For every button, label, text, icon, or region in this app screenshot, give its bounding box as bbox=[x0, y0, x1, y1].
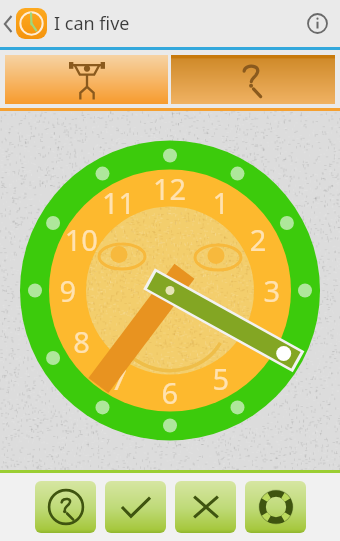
button[interactable]: Help bbox=[35, 481, 96, 533]
button[interactable]: Accept bbox=[105, 481, 166, 533]
staticText: I can five bbox=[54, 11, 130, 36]
button[interactable]: Reset bbox=[245, 481, 306, 533]
button[interactable]: Back bbox=[3, 0, 47, 47]
button[interactable]: Cancel bbox=[175, 481, 236, 533]
button[interactable]: Exercise bbox=[5, 55, 168, 104]
button[interactable]: Help bbox=[171, 55, 335, 104]
button[interactable]: Info bbox=[294, 0, 340, 47]
